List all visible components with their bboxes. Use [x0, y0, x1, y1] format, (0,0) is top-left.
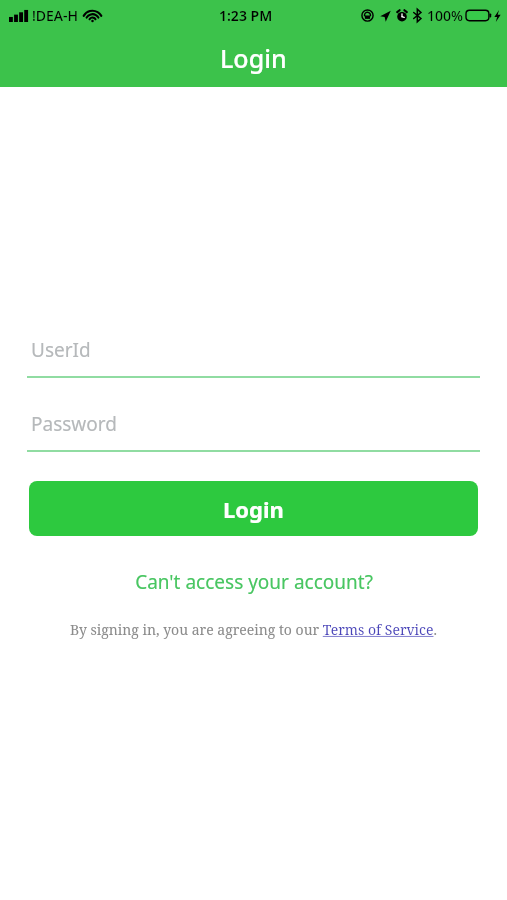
staticText: Login — [220, 41, 287, 75]
staticText: Can't access your account? — [135, 569, 373, 595]
staticText: 100% — [427, 6, 463, 25]
button[interactable]: Login — [29, 481, 478, 536]
button[interactable]: UserId — [27, 337, 480, 378]
button[interactable]: Can't access your account? — [0, 566, 507, 598]
staticText: !DEA-H — [32, 6, 78, 25]
staticText: Login — [223, 494, 284, 524]
button[interactable]: By signing in, you are agreeing to our T… — [70, 620, 437, 639]
staticText: UserId — [31, 337, 91, 363]
staticText: Password — [31, 411, 117, 437]
button[interactable]: Password — [27, 411, 480, 452]
staticText: 1:23 PM — [219, 6, 273, 25]
